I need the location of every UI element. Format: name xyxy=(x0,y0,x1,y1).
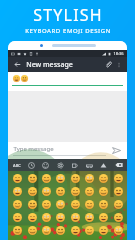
staticText: 18:36 xyxy=(113,51,124,56)
button[interactable]: Category 1 xyxy=(25,159,38,171)
button[interactable]: Emoji 34 xyxy=(40,224,52,236)
button[interactable]: Emoji 1 xyxy=(26,172,38,184)
button[interactable]: Emoji 32 xyxy=(11,224,23,236)
button[interactable]: Emoji 22 xyxy=(97,198,109,210)
button[interactable]: Emoji 27 xyxy=(54,211,66,223)
button[interactable]: ABC xyxy=(10,161,23,170)
button[interactable]: Emoji 26 xyxy=(40,211,52,223)
button[interactable]: Emoji 7 xyxy=(112,172,124,184)
button[interactable]: Emoji 33 xyxy=(26,224,38,236)
staticText: New message xyxy=(26,60,73,70)
button[interactable]: Emoji 28 xyxy=(69,211,81,223)
button[interactable]: Emoji 4 xyxy=(69,172,81,184)
button[interactable]: Emoji 15 xyxy=(112,185,124,197)
button[interactable]: Emoji 25 xyxy=(26,211,38,223)
button[interactable]: Emoji 12 xyxy=(69,185,81,197)
button[interactable]: Emoji 3 xyxy=(54,172,66,184)
button[interactable]: Emoji 2 xyxy=(40,172,52,184)
button[interactable]: Emoji 11 xyxy=(54,185,66,197)
button[interactable]: Emoji 9 xyxy=(26,185,38,197)
button[interactable]: Emoji 19 xyxy=(54,198,66,210)
button[interactable]: Category 5 xyxy=(83,159,96,171)
button[interactable]: Emoji 35 xyxy=(54,224,66,236)
staticText: ABC xyxy=(13,163,21,168)
button[interactable]: Backspace xyxy=(112,159,125,171)
button[interactable]: Emoji 37 xyxy=(83,224,95,236)
button[interactable]: Emoji 6 xyxy=(97,172,109,184)
staticText: KEYBOARD EMOJI DESIGN xyxy=(25,27,111,35)
button[interactable]: Emoji 17 xyxy=(26,198,38,210)
button[interactable]: Category 3 xyxy=(54,159,67,171)
staticText: STYLISH xyxy=(33,4,103,26)
button[interactable]: Category 2 xyxy=(39,159,52,171)
button[interactable]: Emoji 10 xyxy=(40,185,52,197)
button[interactable]: Attach xyxy=(103,59,114,70)
button[interactable]: Emoji 20 xyxy=(69,198,81,210)
button[interactable]: Emoji 8 xyxy=(11,185,23,197)
button[interactable]: Emoji 13 xyxy=(83,185,95,197)
button[interactable]: Emoji 24 xyxy=(11,211,23,223)
button[interactable]: Emoji 18 xyxy=(40,198,52,210)
staticText: Type message xyxy=(13,145,54,153)
button[interactable]: Emoji 21 xyxy=(83,198,95,210)
button[interactable]: Emoji 14 xyxy=(97,185,109,197)
button[interactable]: Emoji 29 xyxy=(83,211,95,223)
button[interactable]: Emoji 38 xyxy=(97,224,109,236)
button[interactable]: Emoji 5 xyxy=(83,172,95,184)
button[interactable]: Back xyxy=(12,59,23,70)
button[interactable]: Emoji 36 xyxy=(69,224,81,236)
button[interactable]: Category 4 xyxy=(68,159,81,171)
button[interactable]: Emoji 0 xyxy=(11,172,23,184)
button[interactable]: Emoji 23 xyxy=(112,198,124,210)
button[interactable]: Send xyxy=(110,144,123,157)
button[interactable]: Emoji 31 xyxy=(112,211,124,223)
button[interactable] xyxy=(13,75,28,82)
button[interactable]: Emoji 39 xyxy=(112,224,124,236)
button[interactable]: More options xyxy=(114,60,123,69)
button[interactable]: Emoji 30 xyxy=(97,211,109,223)
button[interactable]: Emoji 16 xyxy=(11,198,23,210)
button[interactable]: Category 6 xyxy=(97,159,110,171)
